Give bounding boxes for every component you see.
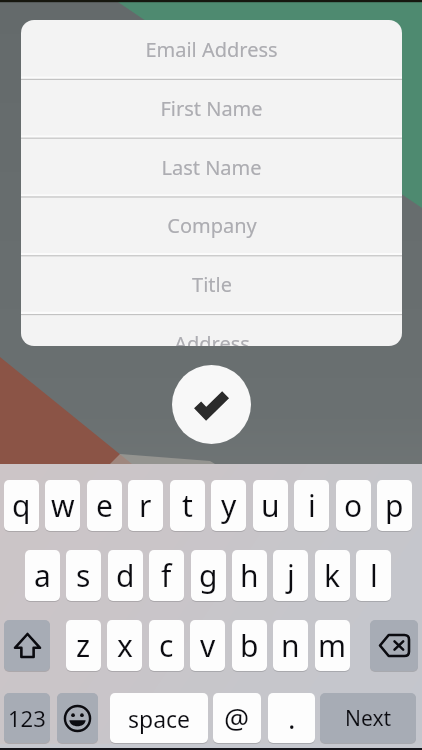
button[interactable]: v [190, 620, 225, 671]
staticText: y [221, 485, 237, 526]
button[interactable]: f [149, 550, 184, 601]
button[interactable]: First Name [21, 79, 402, 138]
staticText: b [240, 625, 259, 666]
button[interactable]: p [377, 480, 412, 531]
staticText: k [324, 555, 341, 596]
staticText: @ [224, 699, 250, 737]
button[interactable]: i [294, 480, 329, 531]
button[interactable]: @ [213, 693, 261, 743]
button[interactable]: Backspace [370, 620, 418, 671]
staticText: . [288, 699, 296, 737]
staticText: n [281, 625, 300, 666]
button[interactable]: n [273, 620, 308, 671]
staticText: u [261, 485, 280, 526]
staticText: h [240, 555, 259, 596]
staticText: f [161, 555, 172, 596]
staticText: z [76, 625, 91, 666]
button[interactable]: m [315, 620, 350, 671]
button[interactable]: y [211, 480, 246, 531]
staticText: First Name [160, 95, 263, 122]
staticText: q [12, 485, 31, 526]
button[interactable]: c [149, 620, 184, 671]
button[interactable]: . [268, 693, 315, 743]
staticText: i [308, 485, 316, 526]
button[interactable]: d [108, 550, 143, 601]
button[interactable]: l [356, 550, 391, 601]
staticText: Email Address [145, 36, 278, 63]
button[interactable]: Title [21, 255, 402, 314]
button[interactable]: o [336, 480, 371, 531]
staticText: Address [174, 330, 250, 346]
button[interactable]: w [45, 480, 80, 531]
button[interactable]: Email Address [21, 20, 402, 79]
button[interactable]: z [66, 620, 101, 671]
staticText: p [385, 485, 404, 526]
staticText: Company [167, 212, 257, 239]
button[interactable]: Shift [4, 620, 50, 671]
staticText: Last Name [161, 154, 262, 181]
button[interactable]: Last Name [21, 138, 402, 197]
staticText: j [287, 555, 295, 596]
staticText: e [96, 485, 113, 526]
staticText: c [159, 625, 174, 666]
button[interactable]: Submit [172, 365, 251, 444]
button[interactable]: Company [21, 196, 402, 255]
button[interactable]: r [128, 480, 163, 531]
staticText: r [139, 485, 152, 526]
button[interactable]: Emoji [57, 693, 98, 743]
staticText: l [370, 555, 378, 596]
button[interactable]: Next [320, 693, 416, 743]
staticText: w [51, 485, 75, 526]
button[interactable]: x [107, 620, 142, 671]
button[interactable]: Address [21, 314, 402, 346]
button[interactable]: e [87, 480, 122, 531]
button[interactable]: q [4, 480, 39, 531]
button[interactable]: h [232, 550, 267, 601]
staticText: Next [345, 704, 392, 733]
button[interactable]: 123 [4, 693, 50, 743]
button[interactable]: b [232, 620, 267, 671]
staticText: Title [192, 271, 232, 298]
button[interactable]: s [66, 550, 101, 601]
staticText: o [344, 485, 363, 526]
staticText: a [34, 555, 51, 596]
staticText: v [200, 625, 216, 666]
staticText: d [116, 555, 135, 596]
staticText: t [182, 485, 193, 526]
staticText: g [199, 555, 218, 596]
button[interactable]: j [273, 550, 308, 601]
staticText: x [117, 625, 133, 666]
button[interactable]: a [25, 550, 60, 601]
staticText: space [128, 703, 191, 734]
button[interactable]: k [315, 550, 350, 601]
button[interactable]: g [191, 550, 226, 601]
button[interactable]: space [110, 693, 208, 743]
button[interactable]: t [170, 480, 205, 531]
button[interactable]: u [253, 480, 288, 531]
staticText: m [318, 625, 347, 666]
staticText: s [76, 555, 91, 596]
staticText: 123 [8, 703, 46, 733]
